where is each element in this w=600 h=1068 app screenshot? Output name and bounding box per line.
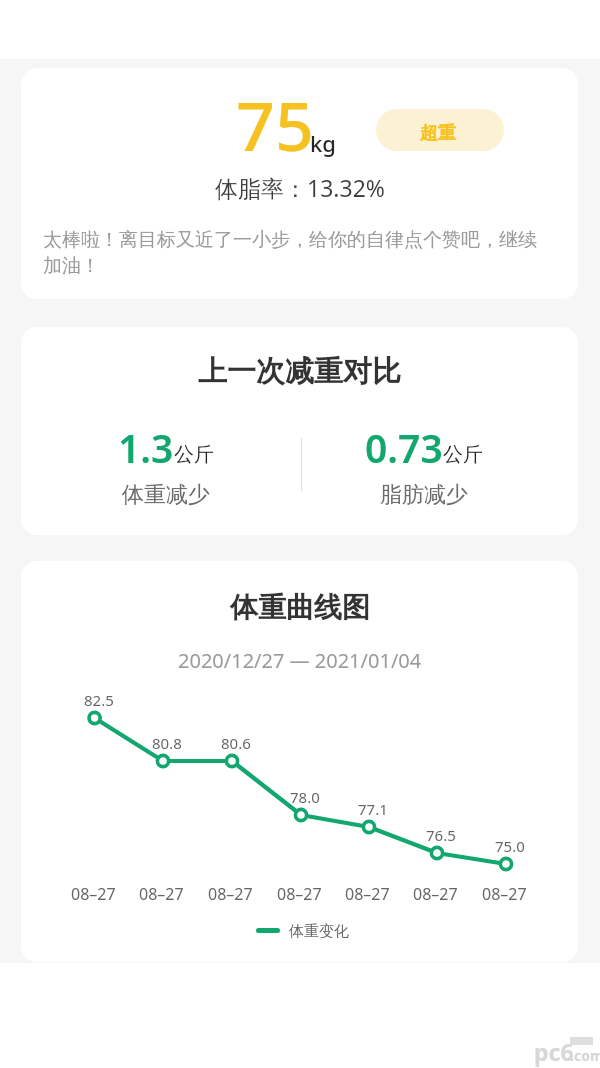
staticText: 1.3 — [118, 421, 174, 474]
staticText: 0.73 — [365, 421, 443, 474]
staticText: 77.1 — [358, 799, 388, 819]
staticText: 超重 — [420, 122, 456, 145]
staticText: 82.5 — [84, 690, 114, 710]
staticText: 08–27 — [208, 883, 253, 905]
staticText: 公斤 — [443, 442, 483, 467]
button[interactable]: 超重 — [376, 109, 504, 151]
staticText: 体重变化 — [289, 922, 349, 941]
staticText: 78.0 — [290, 787, 320, 807]
staticText: kg — [310, 128, 336, 158]
other: pc6.com — [530, 1030, 600, 1068]
button[interactable]: 1.3 — [46, 421, 286, 509]
staticText: 体脂率：13.32% — [215, 172, 385, 203]
staticText: pc6 — [534, 1036, 574, 1067]
button[interactable]: 75 — [21, 68, 578, 299]
staticText: .com — [570, 1046, 600, 1065]
staticText: 08–27 — [482, 883, 527, 905]
staticText: 2020/12/27 — 2021/01/04 — [178, 647, 422, 674]
staticText: 75.0 — [495, 836, 525, 856]
staticText: 体重曲线图 — [230, 590, 370, 625]
button[interactable]: 0.73 — [304, 421, 544, 509]
staticText: 08–27 — [345, 883, 390, 905]
staticText: 脂肪减少 — [380, 481, 468, 509]
staticText: 80.8 — [152, 733, 182, 753]
staticText: 上一次减重对比 — [198, 353, 401, 390]
staticText: 08–27 — [71, 883, 116, 905]
staticText: 75 — [236, 78, 314, 171]
staticText: 08–27 — [413, 883, 458, 905]
staticText: 体重减少 — [122, 481, 210, 509]
staticText: 76.5 — [426, 825, 456, 845]
button[interactable]: 体重曲线图 — [21, 561, 578, 962]
staticText: 公斤 — [174, 442, 214, 467]
staticText: 08–27 — [139, 883, 184, 905]
staticText: 太棒啦！离目标又近了一小步，给你的自律点个赞吧，继续加油！ — [43, 228, 543, 277]
staticText: 80.6 — [221, 733, 251, 753]
button[interactable]: 上一次减重对比 — [21, 327, 578, 535]
staticText: 08–27 — [277, 883, 322, 905]
